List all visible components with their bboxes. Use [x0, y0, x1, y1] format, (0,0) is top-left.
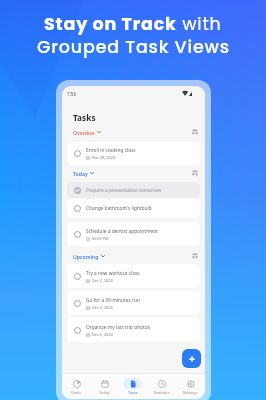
staticText: 05:00 PM	[92, 236, 109, 241]
button[interactable]: Overdue	[73, 128, 198, 136]
button[interactable]: Prepare a presentation tomorrow	[67, 182, 200, 198]
staticText: Dec 2, 2024	[92, 278, 113, 283]
button[interactable]: Tasks	[118, 378, 147, 395]
staticText: Settings	[183, 390, 198, 395]
staticText: Statistics	[154, 390, 170, 395]
button[interactable]: Schedule a dentist appointment	[67, 222, 200, 246]
staticText: Dec 6, 2024	[92, 332, 113, 337]
button[interactable]: Add task	[182, 349, 201, 368]
other: Group options	[192, 170, 198, 176]
staticText: Today	[99, 390, 110, 395]
button[interactable]: Go for a 30-minutes run	[67, 291, 200, 315]
staticText: Dec 4, 2024	[92, 305, 113, 310]
staticText: Overdue	[73, 129, 95, 136]
staticText: Organize my last trip photos	[86, 324, 151, 331]
staticText: Schedule a dentist appointment	[86, 228, 158, 235]
staticText: Go for a 30-minutes run	[86, 297, 140, 304]
staticText: Grouped Task Views	[37, 35, 230, 60]
staticText: Nov 28, 2024	[92, 155, 116, 160]
button[interactable]: Change bathroom's lightbulb	[67, 199, 200, 218]
button[interactable]: Enroll in cooking class	[67, 142, 200, 165]
button[interactable]: Goals	[62, 378, 90, 395]
staticText: Enroll in cooking class	[86, 147, 136, 154]
button[interactable]: Today	[90, 378, 118, 395]
button[interactable]: Upcoming	[73, 252, 198, 260]
other: Group options	[192, 129, 198, 135]
button[interactable]: Today	[73, 169, 198, 177]
staticText: 7:56	[67, 91, 77, 97]
button[interactable]: Settings	[176, 378, 205, 395]
staticText: Tasks	[73, 112, 96, 123]
staticText: Tasks	[128, 390, 138, 395]
staticText: Change bathroom's lightbulb	[86, 205, 152, 212]
staticText: Today	[73, 170, 88, 177]
staticText: Upcoming	[73, 253, 99, 260]
staticText: Stay on Track with	[44, 12, 222, 37]
other: Group options	[192, 253, 198, 259]
staticText: Goals	[71, 390, 81, 395]
staticText: Try a new workout class	[86, 270, 140, 277]
button[interactable]: Organize my last trip photos	[67, 318, 200, 342]
button[interactable]: Try a new workout class	[67, 264, 200, 288]
staticText: Prepare a presentation tomorrow	[86, 187, 162, 194]
button[interactable]: Statistics	[147, 378, 176, 395]
